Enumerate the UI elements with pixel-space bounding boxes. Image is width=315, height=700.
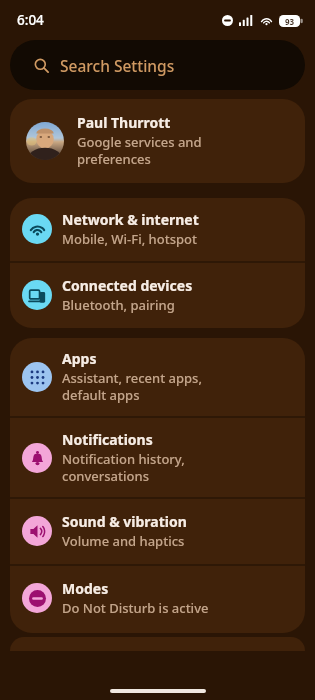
- staticText: Bluetooth, pairing: [62, 296, 175, 314]
- button[interactable]: Modes: [10, 566, 305, 633]
- staticText: Notifications: [62, 430, 153, 449]
- other: Sound and vibration: [29, 523, 46, 540]
- other: Network and internet: [29, 221, 46, 238]
- staticText: Connected devices: [62, 276, 193, 295]
- staticText: 6:04: [17, 11, 44, 29]
- other: Modes: [29, 590, 46, 607]
- staticText: Assistant, recent apps, default apps: [62, 369, 202, 404]
- other: Apps: [29, 369, 46, 386]
- staticText: Network & internet: [62, 210, 199, 229]
- other: Connected devices: [29, 287, 46, 304]
- staticText: Sound & vibration: [62, 512, 187, 531]
- staticText: Mobile, Wi-Fi, hotspot: [62, 230, 197, 248]
- staticText: Modes: [62, 579, 109, 598]
- button[interactable]: Connected devices: [10, 263, 305, 328]
- staticText: Volume and haptics: [62, 532, 185, 550]
- staticText: Search Settings: [60, 55, 175, 76]
- button[interactable]: Sound and vibration: [10, 499, 305, 564]
- button[interactable]: Notifications: [10, 418, 305, 497]
- staticText: Do Not Disturb is active: [62, 599, 209, 617]
- staticText: Google services and preferences: [77, 133, 202, 168]
- button[interactable]: Apps: [10, 338, 305, 416]
- button[interactable]: Network and internet: [10, 198, 305, 261]
- staticText: 93: [285, 16, 295, 27]
- staticText: Paul Thurrott: [77, 113, 171, 132]
- button[interactable]: Search Settings: [10, 40, 305, 90]
- staticText: Apps: [62, 349, 97, 368]
- button[interactable]: Paul Thurrott: [10, 99, 305, 183]
- other: Notifications: [29, 450, 46, 467]
- staticText: Notification history, conversations: [62, 450, 185, 485]
